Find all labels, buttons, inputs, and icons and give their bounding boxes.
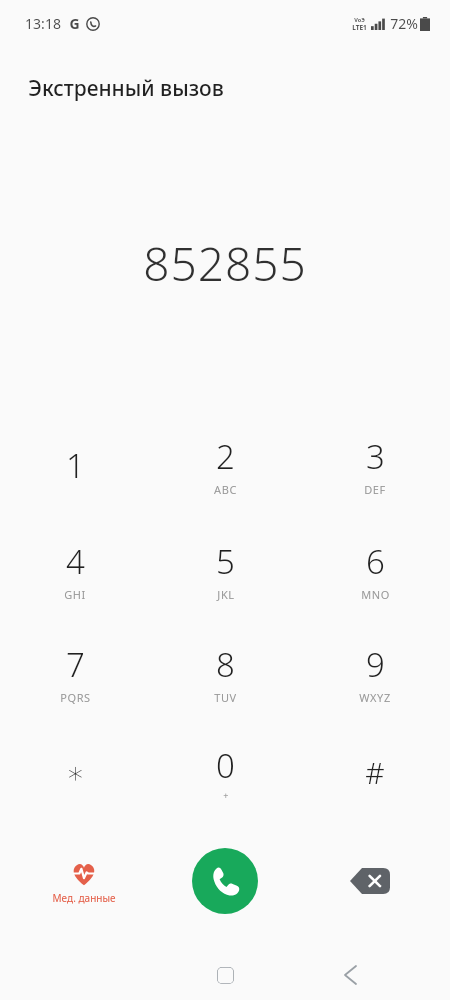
staticText: 9 (366, 642, 385, 687)
staticText: 13:18 (25, 14, 61, 33)
staticText: 4 (66, 539, 85, 584)
staticText: # (365, 752, 385, 793)
staticText: 6 (366, 539, 385, 584)
staticText: 0 (216, 743, 235, 788)
button[interactable]: Backspace (350, 868, 390, 894)
staticText: GHI (64, 587, 86, 602)
button[interactable]: 9 (300, 639, 450, 707)
staticText: LTE1 (352, 23, 367, 32)
staticText: Мед. данные (52, 891, 116, 905)
button[interactable]: 2 (150, 431, 300, 499)
staticText: 852855 (143, 232, 307, 295)
button[interactable]: Back (333, 958, 367, 992)
staticText: + (223, 789, 229, 801)
staticText: ∗ (66, 755, 85, 790)
button[interactable]: Мед. данные (52, 861, 116, 905)
staticText: 7 (66, 642, 85, 687)
button[interactable]: Call (192, 848, 258, 914)
button[interactable]: 1 (0, 431, 150, 499)
staticText: ABC (214, 482, 237, 497)
button[interactable]: 5 (150, 536, 300, 604)
staticText: TUV (214, 690, 237, 705)
staticText: WXYZ (359, 690, 391, 705)
staticText: 1 (66, 443, 85, 488)
staticText: 5 (216, 539, 235, 584)
staticText: PQRS (60, 690, 91, 705)
button[interactable]: # (300, 738, 450, 806)
button[interactable]: ∗ (0, 738, 150, 806)
staticText: G (69, 14, 80, 33)
button[interactable]: 3 (300, 431, 450, 499)
staticText: 8 (216, 642, 235, 687)
staticText: 2 (216, 434, 235, 479)
button[interactable]: 4 (0, 536, 150, 604)
staticText: 72% (390, 14, 418, 33)
staticText: Экстренный вызов (28, 74, 224, 103)
button[interactable]: 7 (0, 639, 150, 707)
button[interactable]: 0 (150, 738, 300, 806)
staticText: JKL (217, 587, 235, 602)
staticText: VoЭ (354, 16, 365, 23)
button[interactable]: Home (208, 958, 242, 992)
button[interactable]: 8 (150, 639, 300, 707)
staticText: MNO (361, 587, 390, 602)
staticText: 3 (366, 434, 385, 479)
staticText: DEF (364, 482, 386, 497)
button[interactable]: 6 (300, 536, 450, 604)
